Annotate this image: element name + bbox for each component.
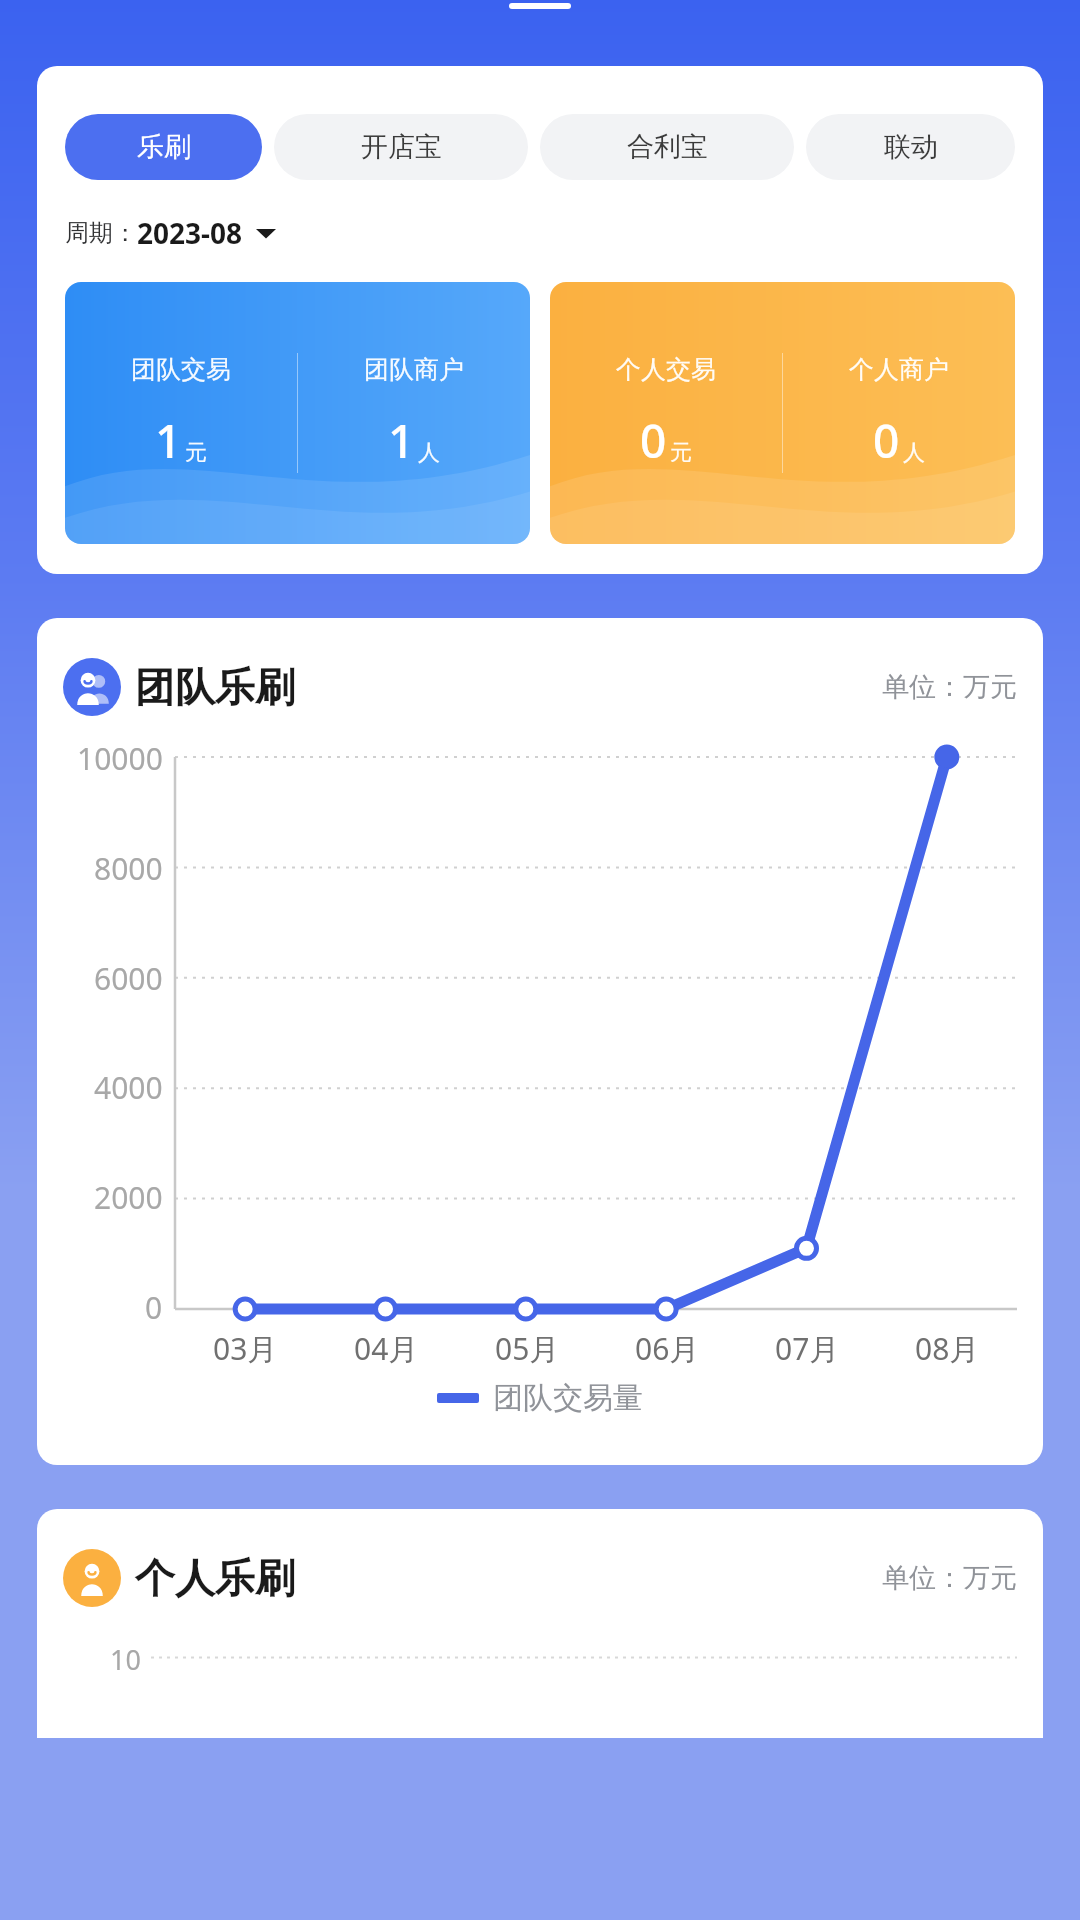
button[interactable]: 乐刷	[65, 114, 262, 180]
staticText: 03月	[213, 1328, 278, 1369]
staticText: 人	[418, 439, 440, 467]
staticText: 团队乐刷	[135, 662, 295, 712]
staticText: 6000	[94, 958, 163, 999]
staticText: 合利宝	[627, 130, 708, 164]
staticText: 乐刷	[137, 130, 191, 164]
button[interactable]: 选择周期	[253, 220, 279, 246]
staticText: 0	[873, 409, 900, 472]
button[interactable]: 开店宝	[274, 114, 528, 180]
staticText: 1	[155, 409, 182, 472]
staticText: 4000	[94, 1067, 163, 1108]
staticText: 2000	[94, 1177, 163, 1218]
staticText: 个人交易	[616, 354, 716, 385]
staticText: 0	[640, 409, 667, 472]
staticText: 团队商户	[364, 354, 464, 385]
button[interactable]: 联动	[806, 114, 1015, 180]
staticText: 05月	[495, 1328, 560, 1369]
staticText: 元	[670, 439, 692, 467]
staticText: 联动	[884, 130, 938, 164]
staticText: 团队交易	[131, 354, 231, 385]
staticText: 10	[110, 1641, 141, 1678]
staticText: 个人商户	[849, 354, 949, 385]
staticText: 个人乐刷	[135, 1553, 295, 1603]
staticText: 04月	[354, 1328, 419, 1369]
staticText: 1	[388, 409, 415, 472]
staticText: 0	[145, 1287, 163, 1328]
staticText: 单位：万元	[882, 1561, 1017, 1595]
staticText: 07月	[775, 1328, 840, 1369]
staticText: 06月	[635, 1328, 700, 1369]
button[interactable]: 个人交易	[550, 282, 1015, 544]
staticText: 8000	[94, 848, 163, 889]
staticText: 2023-08	[137, 214, 243, 252]
staticText: 元	[185, 439, 207, 467]
staticText: 团队交易量	[493, 1379, 643, 1417]
staticText: 周期：	[65, 218, 137, 248]
staticText: 08月	[915, 1328, 980, 1369]
staticText: 单位：万元	[882, 670, 1017, 704]
staticText: 开店宝	[361, 130, 442, 164]
staticText: 10000	[77, 738, 163, 779]
button[interactable]: 合利宝	[540, 114, 794, 180]
staticText: 人	[903, 439, 925, 467]
button[interactable]: 团队交易	[65, 282, 530, 544]
